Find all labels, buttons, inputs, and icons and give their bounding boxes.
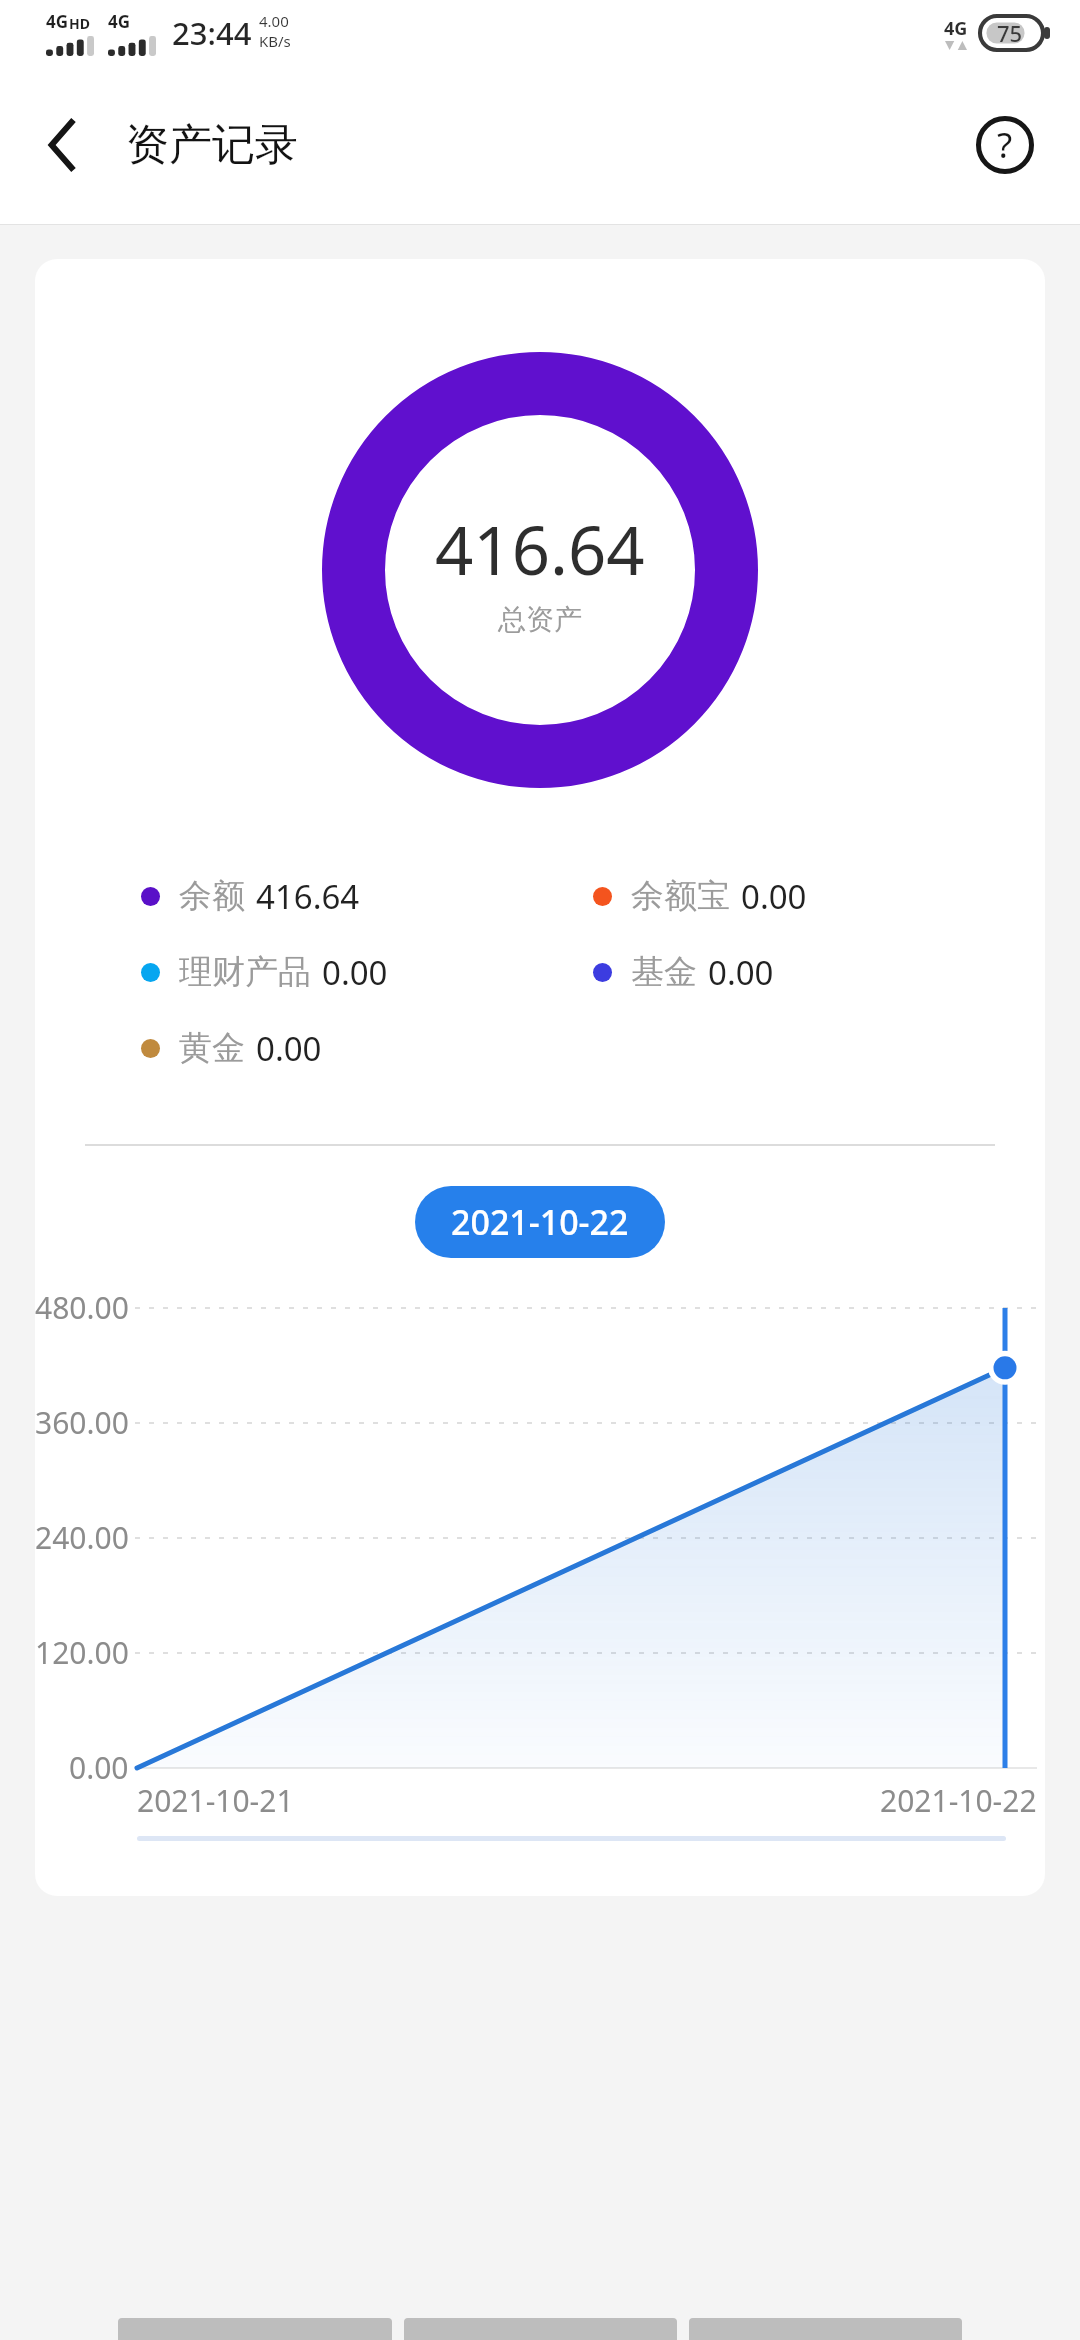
staticText: 黄金 [179,1027,245,1069]
staticText: 0.00 [708,950,774,995]
button[interactable]: 2021-10-22 [415,1186,665,1258]
staticText: 0.00 [322,950,388,995]
staticText: 120.00 [35,1632,129,1673]
staticText: 2021-10-21 [137,1780,294,1821]
button[interactable]: 基金 [593,934,1045,1010]
staticText: 余额 [179,875,245,917]
staticText: 0.00 [256,1026,322,1071]
button[interactable]: 黄金 [141,1010,593,1086]
staticText: 总资产 [498,602,582,637]
staticText: 2021-10-22 [880,1780,1037,1821]
staticText: HD [69,14,90,33]
staticText: 4G [46,10,69,33]
button[interactable]: Help [962,102,1048,188]
button[interactable]: 余额 [141,858,593,934]
staticText: 4.00 [259,11,289,31]
staticText: 理财产品 [179,951,311,993]
staticText: 240.00 [35,1517,129,1558]
button[interactable]: 理财产品 [141,934,593,1010]
staticText: 0.00 [741,874,807,919]
button[interactable]: 余额宝 [593,858,1045,934]
staticText: 416.64 [256,874,360,919]
staticText: 480.00 [35,1287,129,1328]
staticText: 23:44 [172,12,252,54]
button[interactable]: Back [20,102,106,188]
staticText: 360.00 [35,1402,129,1443]
staticText: 416.64 [435,503,645,594]
staticText: 0.00 [69,1747,129,1788]
staticText: 4G [944,16,968,41]
staticText: 基金 [631,951,697,993]
staticText: 资产记录 [126,118,298,172]
staticText: KB/s [259,31,291,51]
staticText: 75 [997,18,1023,48]
staticText: ? [997,121,1013,169]
staticText: 余额宝 [631,875,730,917]
staticText: 4G [108,10,131,33]
staticText: 2021-10-22 [451,1199,629,1245]
